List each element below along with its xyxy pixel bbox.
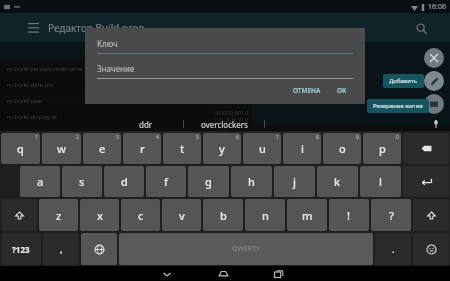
button[interactable]: ro.build.tags — [226, 125, 450, 140]
button[interactable]: Voice input — [430, 118, 442, 130]
staticText: ОК — [337, 86, 347, 95]
button[interactable]: Backup — [424, 94, 444, 114]
button[interactable]: z — [39, 199, 78, 231]
button[interactable]: v — [162, 199, 201, 231]
button[interactable]: t — [163, 133, 201, 164]
button[interactable]: ? — [371, 199, 411, 231]
button[interactable]: Home — [206, 266, 240, 281]
button[interactable]: ?123 — [1, 233, 41, 265]
staticText: ro.product.brand — [7, 145, 56, 153]
staticText: b — [220, 208, 227, 223]
button[interactable]: g — [188, 166, 229, 197]
button[interactable]: overclockers — [184, 116, 264, 132]
button[interactable]: QWERTY — [119, 233, 373, 265]
button[interactable]: s — [62, 166, 102, 197]
button[interactable]: Hide keyboard — [150, 266, 184, 281]
button[interactable]: q — [1, 133, 40, 164]
button[interactable]: Edit — [424, 71, 444, 91]
staticText: 1 — [35, 134, 38, 141]
staticText: o — [339, 141, 346, 156]
staticText: q — [17, 141, 24, 156]
button[interactable]: ОТМЕНА — [287, 83, 327, 98]
button[interactable]: Enter — [403, 166, 449, 197]
button[interactable]: ro.build.version.codename — [0, 61, 252, 76]
button[interactable]: ro.product.model — [226, 141, 450, 156]
staticText: ro.build.user — [7, 97, 43, 105]
button[interactable]: Menu — [22, 17, 44, 39]
button[interactable]: o — [323, 133, 361, 164]
staticText: a — [37, 174, 44, 189]
button[interactable]: ! — [329, 199, 369, 231]
button[interactable]: Change language — [81, 233, 117, 265]
staticText: w — [57, 141, 66, 156]
button[interactable]: m — [287, 199, 327, 231]
button[interactable]: Search — [410, 17, 432, 39]
staticText: ro.build.tags — [233, 129, 269, 137]
staticText: e — [99, 141, 106, 156]
button[interactable]: Backspace — [403, 133, 449, 164]
button[interactable]: p — [363, 133, 401, 164]
button[interactable]: ro.build.date.utc — [0, 77, 252, 92]
staticText: 2 — [76, 134, 79, 141]
button[interactable]: Резервная копия — [367, 99, 429, 113]
staticText: j — [293, 174, 296, 189]
staticText: ro.build.display.id — [7, 113, 57, 121]
button[interactable]: e — [83, 133, 121, 164]
staticText: Ursa REV2.30 — [410, 145, 445, 152]
button[interactable]: l — [360, 166, 401, 197]
staticText: g — [205, 174, 212, 189]
button[interactable]: Emoji — [413, 233, 449, 265]
button[interactable]: b — [203, 199, 243, 231]
button[interactable]: a — [20, 166, 60, 197]
staticText: 16:06 — [428, 2, 446, 12]
staticText: , — [60, 242, 63, 256]
staticText: REV230_R01.0 7.11.2014 V1.0 — [213, 110, 248, 124]
button[interactable]: ddr — [108, 116, 183, 132]
button[interactable]: x — [80, 199, 119, 231]
button[interactable]: y — [203, 133, 241, 164]
button[interactable]: ro.product.brand — [0, 141, 223, 156]
button[interactable]: ОК — [331, 83, 353, 98]
button[interactable]: Recent apps — [262, 266, 296, 281]
button[interactable]: k — [317, 166, 358, 197]
button[interactable]: , — [43, 233, 79, 265]
button[interactable]: Close — [424, 48, 444, 68]
staticText: 9 — [356, 134, 359, 141]
button[interactable]: Shift — [413, 199, 449, 231]
button[interactable]: i — [283, 133, 321, 164]
button[interactable]: r — [123, 133, 161, 164]
staticText: h — [248, 174, 255, 189]
staticText: Ключ — [97, 38, 118, 49]
button[interactable]: ro.build.user — [0, 93, 252, 108]
button[interactable]: Добавить — [383, 74, 424, 88]
button[interactable]: j — [274, 166, 315, 197]
staticText: ? — [389, 208, 394, 223]
staticText: u — [259, 141, 266, 156]
button[interactable]: . — [375, 233, 411, 265]
button[interactable]: ro.build.display.id — [0, 109, 252, 124]
staticText: Добавить — [389, 77, 418, 85]
staticText: ddr — [139, 119, 153, 130]
staticText: v — [179, 208, 185, 223]
button[interactable]: d — [104, 166, 144, 197]
button[interactable]: f — [146, 166, 186, 197]
staticText: ro.build.tags — [7, 129, 43, 137]
staticText: p — [379, 141, 386, 156]
button[interactable]: w — [42, 133, 81, 164]
button[interactable]: h — [231, 166, 272, 197]
staticText: z — [56, 208, 62, 223]
staticText: . — [392, 242, 395, 256]
staticText: m — [302, 208, 313, 223]
staticText: Ursa REV2.30 — [410, 129, 445, 136]
staticText: ro.product.model — [233, 145, 283, 153]
button[interactable]: n — [245, 199, 285, 231]
button[interactable]: u — [243, 133, 281, 164]
staticText: t — [180, 141, 185, 156]
button[interactable]: ro.build.tags — [0, 125, 223, 140]
staticText: 4 — [156, 134, 159, 141]
staticText: ОТМЕНА — [293, 86, 321, 95]
button[interactable]: Shift — [1, 199, 37, 231]
staticText: x — [97, 208, 103, 223]
button[interactable]: c — [121, 199, 160, 231]
